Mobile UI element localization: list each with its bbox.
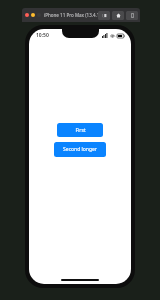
staticText: 10:50 bbox=[36, 32, 49, 39]
button[interactable]: Screenshot bbox=[98, 11, 110, 20]
staticText: First bbox=[75, 127, 86, 134]
button[interactable]: Rotate bbox=[126, 11, 138, 20]
button[interactable]: Second longer bbox=[54, 142, 106, 157]
button[interactable]: Home bbox=[112, 11, 124, 20]
staticText: Second longer bbox=[63, 146, 97, 153]
button[interactable]: Close bbox=[25, 13, 29, 17]
staticText: iPhone 11 Pro Max (13.4.1) bbox=[44, 12, 101, 18]
button[interactable]: First bbox=[57, 123, 103, 137]
button[interactable]: Minimize bbox=[31, 13, 35, 17]
